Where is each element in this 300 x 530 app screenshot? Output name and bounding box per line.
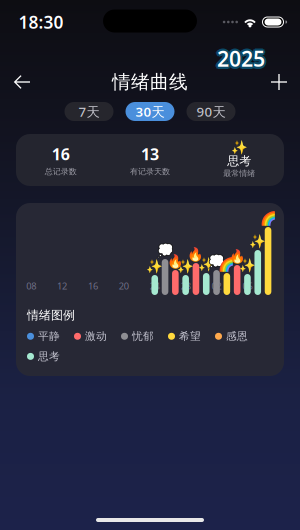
staticText: 思考 <box>227 154 251 168</box>
staticText: 2025 <box>219 46 267 74</box>
staticText: 忧郁 <box>132 330 154 343</box>
staticText: 18:30 <box>18 10 63 33</box>
staticText: 02 <box>212 280 222 292</box>
button[interactable]: 30天 <box>125 102 174 121</box>
staticText: 13 <box>141 143 159 165</box>
button[interactable]: 90天 <box>186 102 235 121</box>
staticText: 🌈 <box>218 257 235 272</box>
button[interactable]: Add entry <box>258 65 300 99</box>
staticText: ✨ <box>231 140 248 155</box>
staticText: 有记录天数 <box>130 167 170 176</box>
staticText: 总记录数 <box>45 167 77 176</box>
staticText: 情绪曲线 <box>112 70 188 93</box>
staticText: 2025 <box>215 43 263 71</box>
staticText: ✨ <box>249 234 266 249</box>
staticText: 2025 <box>215 44 263 73</box>
staticText: 08 <box>26 280 36 292</box>
staticText: 28 <box>181 280 191 292</box>
staticText: 06 <box>242 280 252 292</box>
staticText: 2025 <box>217 46 265 75</box>
staticText: 30天 <box>135 103 164 120</box>
staticText: 16 <box>88 280 98 292</box>
staticText: 90天 <box>196 103 225 120</box>
staticText: 2025 <box>219 43 267 71</box>
staticText: 平静 <box>38 330 60 343</box>
staticText: ✨ <box>239 258 256 273</box>
staticText: 2025 <box>219 44 267 73</box>
staticText: ✨ <box>198 257 215 272</box>
staticText: 2025 <box>217 42 265 70</box>
staticText: 2025 <box>215 46 263 74</box>
staticText: 🔥 <box>229 249 246 264</box>
staticText: 🌈 <box>260 211 277 226</box>
staticText: 2025 <box>217 44 265 73</box>
button[interactable]: 7天 <box>64 102 113 121</box>
staticText: 🔥 <box>187 247 204 262</box>
staticText: 情绪图例 <box>27 308 75 323</box>
staticText: ✨ <box>146 259 163 274</box>
staticText: 16 <box>52 143 70 165</box>
staticText: 最常情绪 <box>223 168 255 178</box>
staticText: 希望 <box>179 330 201 343</box>
staticText: 12 <box>57 280 67 292</box>
staticText: 🔥 <box>167 254 184 269</box>
staticText: 7天 <box>78 103 99 120</box>
staticText: ✨ <box>177 259 194 274</box>
staticText: 感恩 <box>226 330 248 343</box>
staticText: 24 <box>150 280 160 292</box>
staticText: 💭 <box>208 254 225 269</box>
staticText: 激动 <box>85 330 107 343</box>
staticText: 💭 <box>156 243 173 258</box>
staticText: 思考 <box>38 350 60 363</box>
staticText: 20 <box>119 280 129 292</box>
button[interactable]: Back <box>0 65 44 99</box>
